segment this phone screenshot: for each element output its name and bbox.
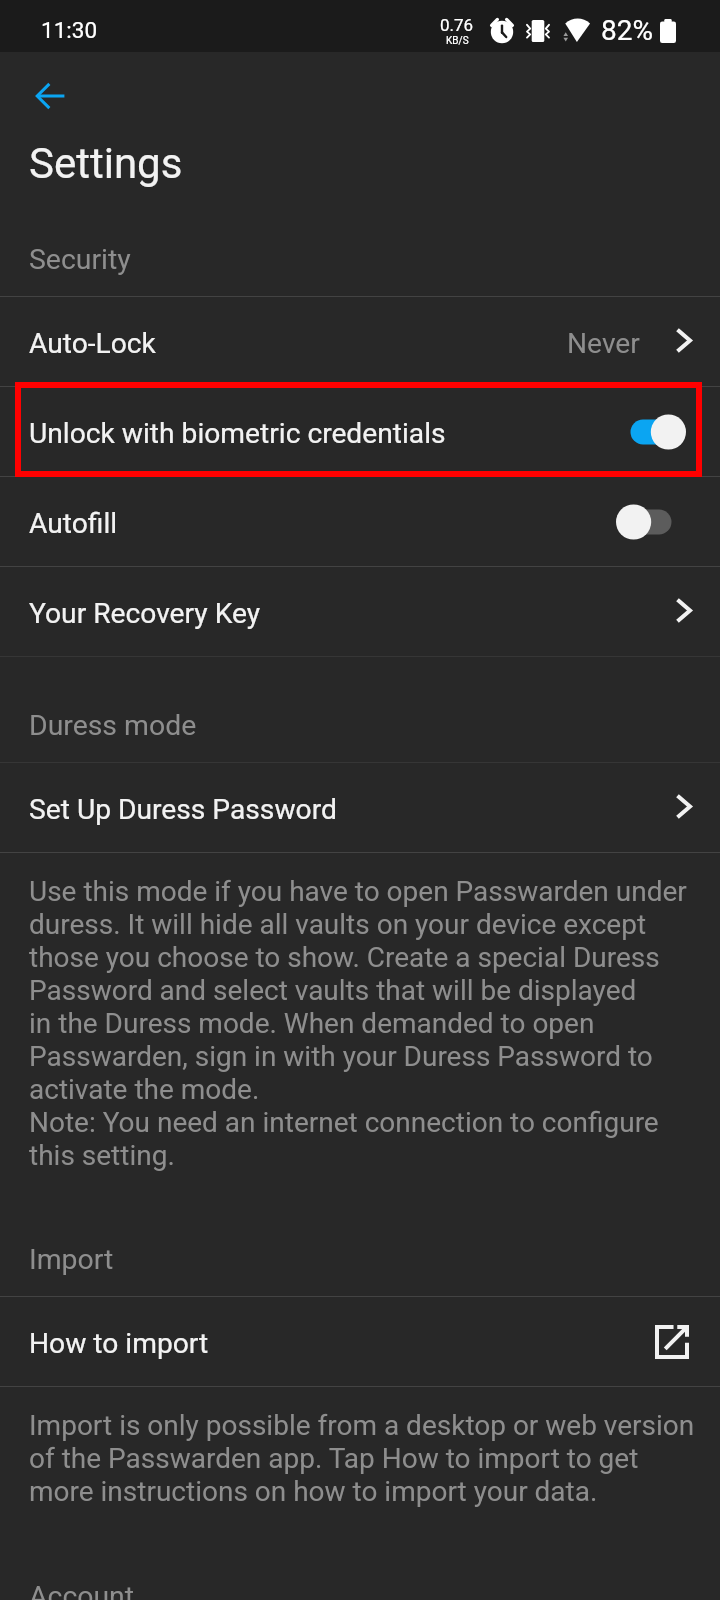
staticText: KB/S — [446, 35, 469, 47]
button[interactable]: Open — [662, 786, 706, 830]
button[interactable]: Open — [662, 320, 706, 364]
button[interactable]: Back — [0, 52, 99, 139]
staticText: Import — [29, 1243, 114, 1276]
button[interactable]: Unlock with biometric credentials — [0, 387, 720, 476]
staticText: Never — [567, 327, 640, 360]
staticText: Unlock with biometric credentials — [29, 417, 446, 450]
button[interactable]: Set Up Duress Password — [0, 763, 720, 852]
staticText: Security — [29, 243, 131, 276]
staticText: 11:30 — [41, 17, 98, 43]
staticText: Import is only possible from a desktop o… — [29, 1409, 695, 1508]
button[interactable]: Toggle biometric unlock — [616, 412, 686, 452]
staticText: Auto-Lock — [29, 327, 156, 360]
button[interactable]: How to import — [0, 1297, 720, 1386]
staticText: How to import — [29, 1327, 209, 1360]
staticText: 82% — [601, 14, 653, 47]
staticText: Use this mode if you have to open Passwa… — [29, 875, 687, 1172]
button[interactable]: How to import, opens in new window — [648, 1318, 696, 1366]
staticText: Autofill — [29, 507, 118, 540]
button[interactable]: Auto-Lock — [0, 297, 720, 386]
staticText: Settings — [29, 139, 183, 188]
button[interactable]: Your Recovery Key — [0, 567, 720, 656]
staticText: Your Recovery Key — [29, 597, 261, 630]
staticText: Account — [29, 1580, 135, 1600]
button[interactable]: Autofill — [0, 477, 720, 566]
button[interactable]: Toggle autofill — [616, 502, 686, 542]
staticText: Set Up Duress Password — [29, 793, 337, 826]
staticText: Duress mode — [29, 709, 197, 742]
staticText: 0.76 — [440, 15, 474, 35]
button[interactable]: Open — [662, 590, 706, 634]
